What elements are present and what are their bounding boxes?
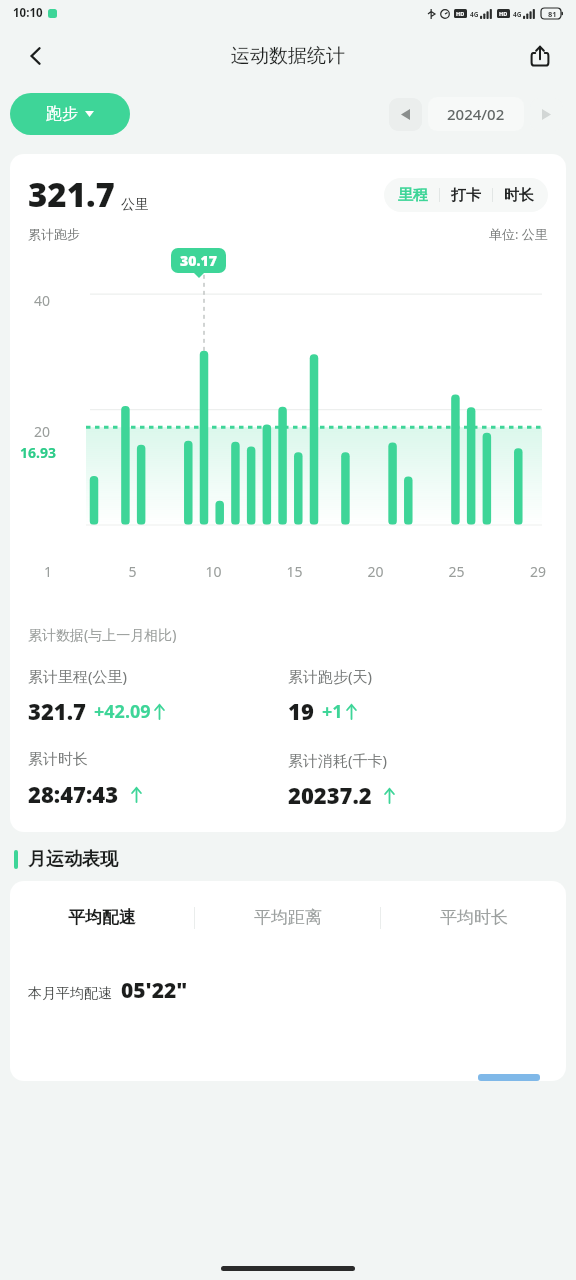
button[interactable]: Previous month [389, 98, 422, 131]
staticText: 1 [44, 562, 92, 581]
staticText: 单位: 公里 [489, 225, 548, 243]
staticText: 月运动表现 [28, 848, 118, 871]
staticText: 25 [416, 562, 497, 581]
staticText: 81 [548, 9, 557, 19]
staticText: 4G [470, 10, 479, 19]
staticText: 打卡 [451, 186, 481, 205]
staticText: 29 [497, 562, 546, 581]
staticText: 4G [513, 10, 522, 19]
staticText: 跑步 [46, 104, 78, 124]
staticText: 累计消耗(千卡) [288, 750, 388, 770]
button[interactable]: Back [12, 32, 60, 80]
staticText: 累计时长 [28, 750, 88, 769]
button[interactable]: 平均时长 [381, 901, 566, 934]
staticText: 2024/02 [447, 104, 505, 124]
staticText: +42.09 [94, 699, 151, 724]
button[interactable]: 里程 [387, 181, 439, 210]
staticText: HD [499, 10, 508, 17]
staticText: 累计跑步(天) [288, 666, 373, 686]
staticText: 累计里程(公里) [28, 666, 128, 686]
staticText: 平均距离 [254, 907, 322, 928]
staticText: 里程 [398, 186, 428, 205]
staticText: HD [456, 10, 465, 17]
staticText: 5 [92, 562, 173, 581]
button[interactable]: Share [516, 32, 564, 80]
button[interactable]: 打卡 [440, 181, 492, 210]
staticText: 05'22" [121, 976, 188, 1005]
button[interactable]: 时长 [493, 181, 545, 210]
staticText: 20 [34, 422, 51, 441]
button[interactable]: 2024/02 [428, 97, 524, 131]
button[interactable]: Next month [530, 98, 563, 131]
staticText: 累计跑步 [28, 226, 80, 242]
staticText: 30.17 [180, 251, 217, 270]
staticText: 平均时长 [440, 907, 508, 928]
staticText: +1 [322, 699, 343, 724]
staticText: 10:10 [13, 5, 43, 21]
staticText: 40 [34, 291, 51, 310]
staticText: 16.93 [20, 443, 56, 462]
staticText: 累计数据(与上一月相比) [28, 625, 177, 644]
staticText: 20 [335, 562, 416, 581]
staticText: 28:47:43 [28, 779, 119, 809]
button[interactable]: 平均距离 [195, 901, 380, 934]
staticText: 时长 [504, 186, 534, 205]
staticText: 平均配速 [68, 907, 136, 928]
button[interactable]: 平均配速 [10, 901, 194, 934]
staticText: 本月平均配速 [28, 985, 112, 1003]
staticText: 321.7 [28, 172, 115, 217]
staticText: 10 [173, 562, 254, 581]
staticText: 321.7 [28, 696, 86, 726]
staticText: 15 [254, 562, 335, 581]
staticText: 公里 [121, 196, 149, 214]
staticText: 运动数据统计 [231, 44, 345, 68]
staticText: 19 [288, 696, 314, 726]
staticText: 20237.2 [288, 780, 372, 810]
button[interactable]: 跑步 [10, 93, 130, 135]
